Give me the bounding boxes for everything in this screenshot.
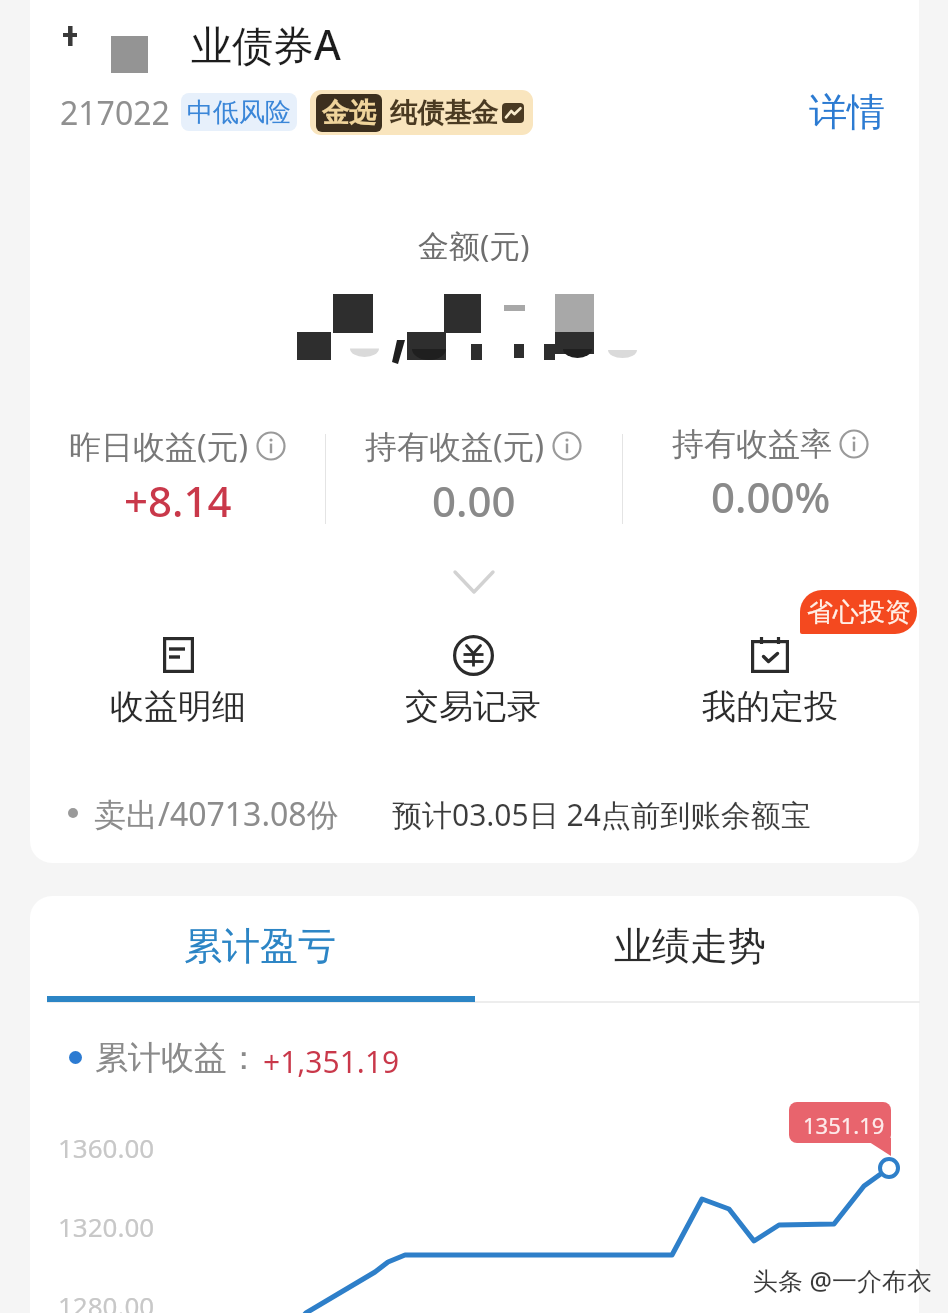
button[interactable]: 省心投资 (800, 590, 917, 634)
staticText: 昨日收益(元) (69, 424, 249, 468)
staticText: 累计盈亏 (184, 922, 336, 970)
staticText: 累计收益： (95, 1037, 260, 1079)
staticText: 我的定投 (702, 685, 838, 728)
button[interactable]: 业债券A (191, 16, 341, 72)
staticText: 1351.19 (803, 1110, 885, 1140)
staticText: 1360.00 (58, 1130, 155, 1165)
staticText: 收益明细 (110, 685, 246, 728)
button[interactable]: 收益明细 (58, 634, 298, 728)
button[interactable]: 昨日收益(元) (30, 424, 325, 534)
staticText: 持有收益率 (672, 424, 832, 464)
button[interactable]: 累计盈亏 (30, 905, 490, 987)
button[interactable]: Expand details (415, 552, 533, 612)
staticText: 详情 (809, 88, 885, 136)
button[interactable]: Add to watchlist (47, 13, 93, 59)
staticText: 交易记录 (405, 685, 541, 728)
staticText: 金选 (322, 96, 376, 130)
button[interactable]: 我的定投 (650, 634, 890, 728)
staticText: 0.00 (432, 472, 516, 529)
button[interactable]: 持有收益(元) (325, 424, 622, 534)
staticText: 中低风险 (187, 96, 291, 129)
button[interactable]: 持有收益率 (622, 424, 919, 534)
staticText: +1,351.19 (263, 1041, 400, 1082)
staticText: 业绩走势 (614, 922, 766, 970)
staticText: 头条 @一介布衣 (753, 1263, 932, 1297)
staticText: 1320.00 (58, 1209, 155, 1244)
staticText: 预计03.05日 24点前到账余额宝 (392, 794, 811, 835)
staticText: 金额(元) (418, 224, 530, 266)
staticText: 0.00% (711, 468, 831, 525)
staticText: 业债券A (191, 16, 341, 72)
staticText: 纯债基金 (390, 96, 498, 130)
staticText: 持有收益(元) (365, 424, 545, 468)
staticText: 1280.00 (58, 1288, 155, 1313)
staticText: +8.14 (124, 472, 232, 529)
staticText: 省心投资 (807, 596, 911, 629)
button[interactable]: 交易记录 (353, 634, 593, 728)
staticText: 卖出/40713.08份 (94, 792, 339, 836)
button[interactable]: 业绩走势 (490, 905, 890, 987)
button[interactable]: 详情 (803, 82, 891, 142)
staticText: 217022 (60, 91, 170, 135)
